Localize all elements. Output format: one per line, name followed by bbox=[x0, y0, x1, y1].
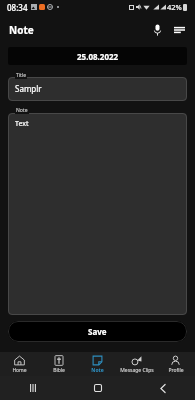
button[interactable]: Recents bbox=[22, 377, 44, 399]
staticText: Samplr bbox=[15, 83, 42, 94]
staticText: Text bbox=[15, 119, 29, 129]
button[interactable]: 25.08.2022 bbox=[8, 47, 187, 65]
button[interactable]: Samplr bbox=[8, 77, 187, 101]
staticText: Message Clips bbox=[120, 367, 154, 374]
button[interactable]: Menu bbox=[169, 20, 189, 40]
button[interactable]: Bible bbox=[39, 354, 78, 374]
button[interactable]: Voice input bbox=[147, 20, 167, 40]
button[interactable]: Text bbox=[8, 113, 187, 315]
staticText: Bible bbox=[53, 367, 65, 374]
staticText: Note bbox=[91, 367, 104, 374]
button[interactable]: Note bbox=[78, 354, 117, 374]
button[interactable]: Back bbox=[152, 377, 174, 399]
staticText: 42% bbox=[167, 2, 182, 12]
staticText: Note bbox=[9, 23, 34, 37]
staticText: Title bbox=[16, 72, 26, 79]
button[interactable]: Home bbox=[0, 354, 39, 374]
staticText: 25.08.2022 bbox=[77, 51, 119, 62]
button[interactable]: Home bbox=[87, 377, 109, 399]
staticText: Home bbox=[12, 367, 27, 374]
staticText: Save bbox=[88, 326, 107, 337]
button[interactable]: Message Clips bbox=[117, 354, 156, 374]
staticText: 08:34 bbox=[7, 2, 28, 13]
button[interactable]: Save bbox=[8, 321, 187, 342]
button[interactable]: Profile bbox=[156, 354, 195, 374]
staticText: Note bbox=[16, 107, 28, 114]
staticText: Profile bbox=[168, 367, 184, 374]
